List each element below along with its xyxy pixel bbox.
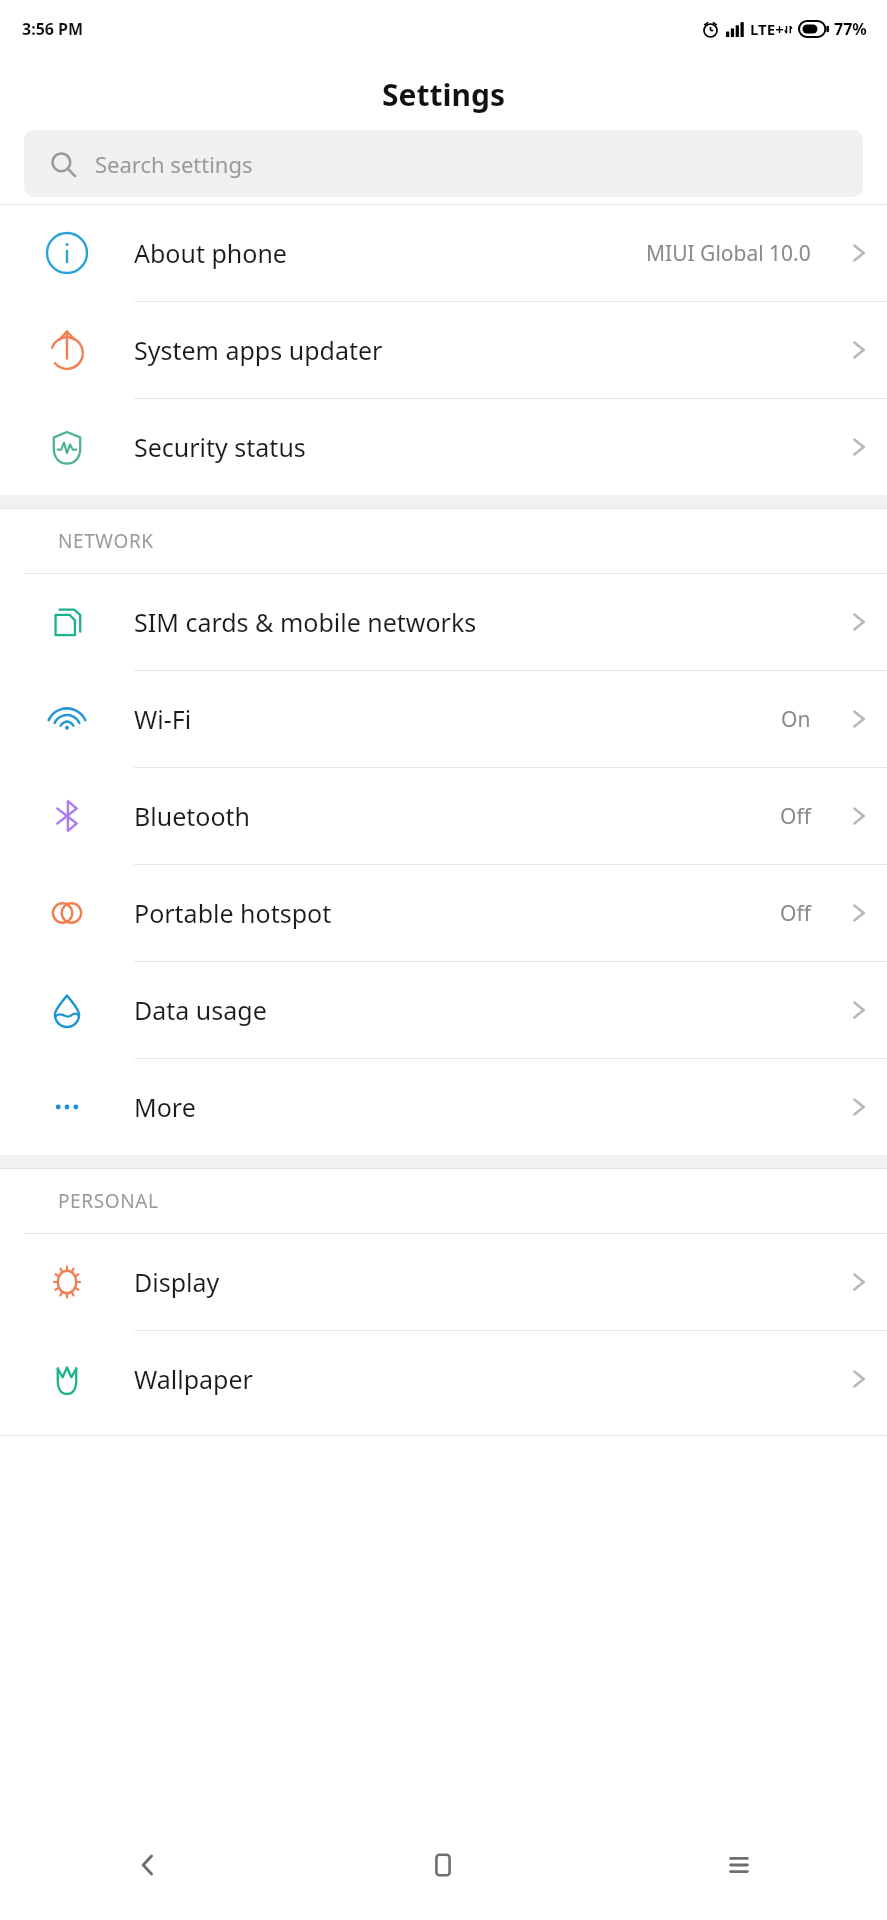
staticText: Settings <box>382 74 505 115</box>
staticText: System apps updater <box>134 333 827 367</box>
staticText: 77% <box>834 18 867 40</box>
button[interactable]: Wi-Fi <box>0 671 887 768</box>
staticText: Search settings <box>95 149 253 179</box>
staticText: Wi-Fi <box>134 702 781 736</box>
button[interactable]: About phone <box>0 205 887 302</box>
button[interactable]: Bluetooth <box>0 768 887 865</box>
button[interactable]: Home <box>295 1810 591 1920</box>
staticText: About phone <box>134 236 646 270</box>
button[interactable]: More <box>0 1059 887 1155</box>
staticText: Off <box>780 899 811 928</box>
staticText: Data usage <box>134 993 827 1027</box>
button[interactable]: Display <box>0 1234 887 1331</box>
staticText: NETWORK <box>58 528 154 554</box>
staticText: LTE+ <box>750 19 784 39</box>
button[interactable]: System apps updater <box>0 302 887 399</box>
staticText: Off <box>780 802 811 831</box>
staticText: MIUI Global 10.0 <box>646 239 811 268</box>
button[interactable]: Back <box>0 1810 295 1920</box>
staticText: Portable hotspot <box>134 896 780 930</box>
staticText: Security status <box>134 430 827 464</box>
staticText: More <box>134 1090 827 1124</box>
button[interactable]: Search settings <box>24 130 863 197</box>
button[interactable]: Portable hotspot <box>0 865 887 962</box>
button[interactable]: Wallpaper <box>0 1331 887 1427</box>
button[interactable]: Recent apps <box>591 1810 887 1920</box>
staticText: PERSONAL <box>58 1188 159 1214</box>
button[interactable]: SIM cards & mobile networks <box>0 574 887 671</box>
staticText: Wallpaper <box>134 1362 827 1396</box>
staticText: On <box>781 705 811 734</box>
staticText: SIM cards & mobile networks <box>134 605 827 639</box>
button[interactable]: Data usage <box>0 962 887 1059</box>
staticText: Bluetooth <box>134 799 780 833</box>
staticText: 3:56 PM <box>22 18 84 40</box>
button[interactable]: Security status <box>0 399 887 495</box>
staticText: Display <box>134 1265 827 1299</box>
